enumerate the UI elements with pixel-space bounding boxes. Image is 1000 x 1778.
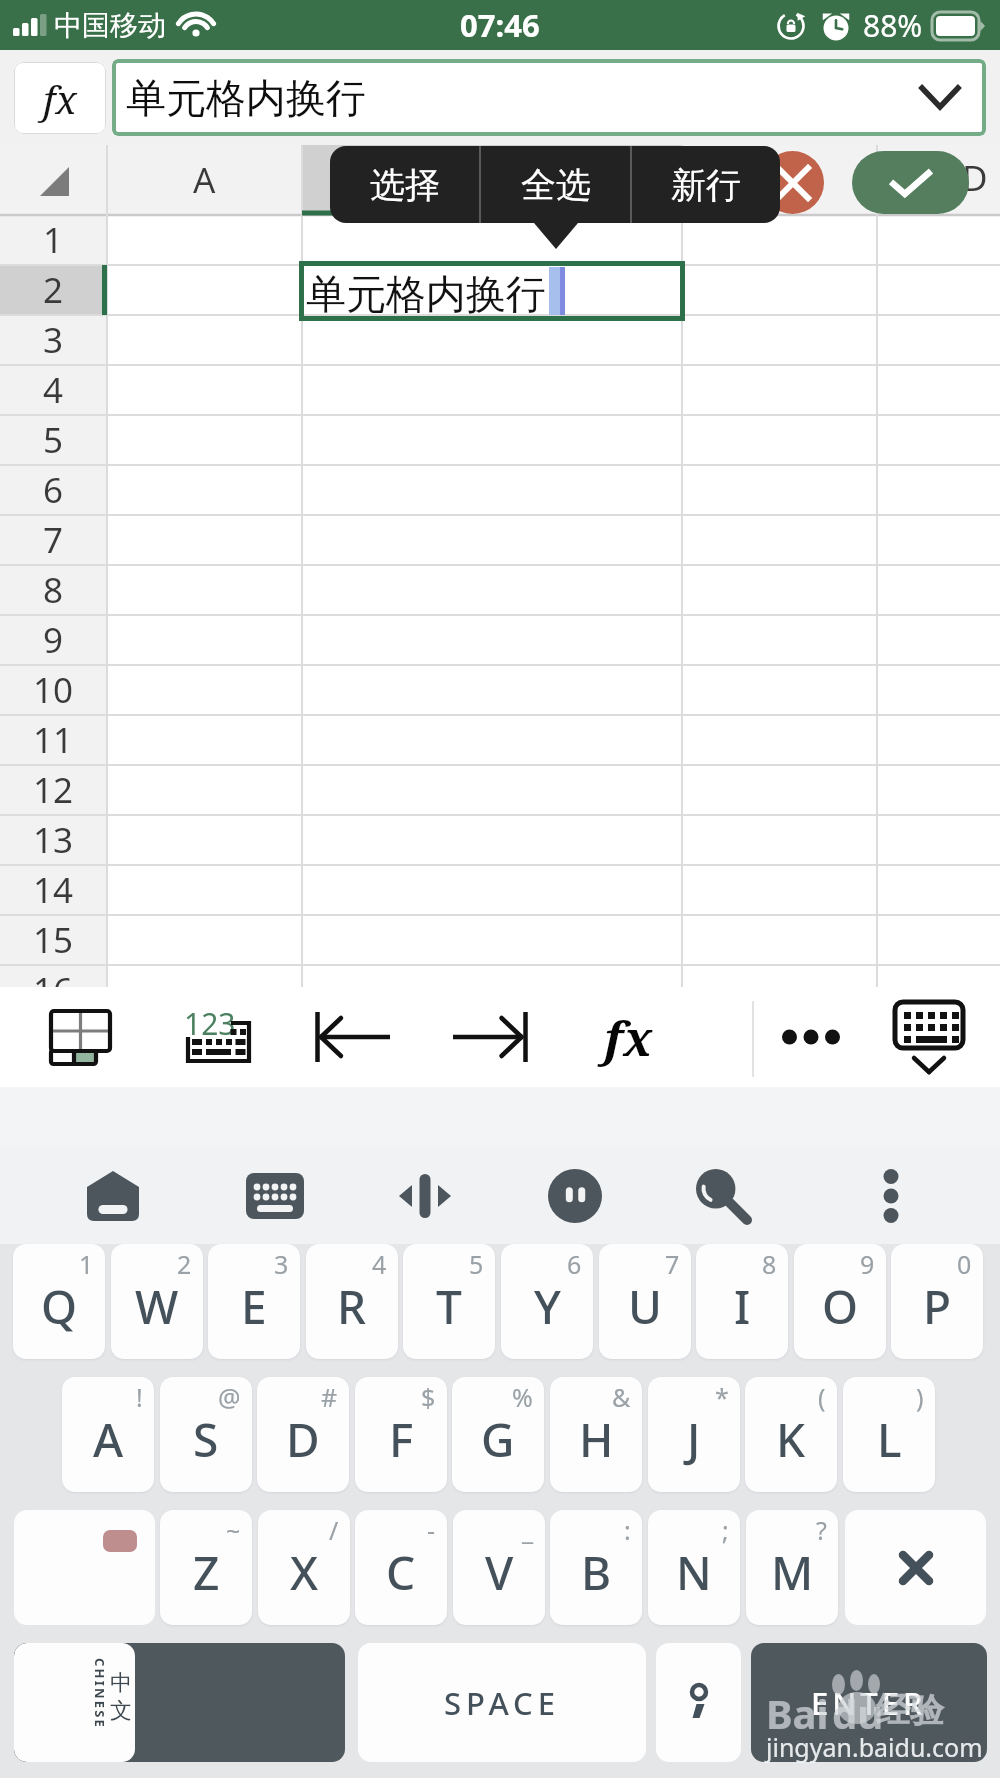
staticText: U	[628, 1275, 662, 1338]
button[interactable]: 全选	[481, 146, 630, 223]
staticText: 8	[43, 566, 64, 614]
button[interactable]: Accept	[852, 151, 969, 214]
button[interactable]: :	[550, 1510, 642, 1625]
button[interactable]: @	[160, 1377, 252, 1492]
button[interactable]: ~	[160, 1510, 252, 1625]
staticText: 88%	[863, 5, 923, 46]
button[interactable]: 选择	[330, 146, 479, 223]
staticText: 10	[33, 666, 74, 714]
staticText: O	[822, 1275, 859, 1338]
button[interactable]: Hide keyboard	[870, 987, 988, 1087]
button[interactable]: 2	[111, 1244, 203, 1359]
staticText: *	[715, 1380, 729, 1414]
staticText: D	[286, 1408, 320, 1471]
staticText: du	[832, 1686, 884, 1740]
button[interactable]: %	[452, 1377, 544, 1492]
staticText: S	[193, 1408, 219, 1471]
button[interactable]: Semicolon	[656, 1643, 741, 1762]
button[interactable]: 0	[891, 1244, 983, 1359]
button[interactable]: More options	[850, 1148, 932, 1244]
staticText: N	[676, 1541, 712, 1604]
button[interactable]: Move left	[292, 987, 412, 1087]
staticText: ;	[722, 1513, 729, 1547]
staticText: 7	[43, 516, 64, 564]
staticText: 单元格内换行	[126, 73, 366, 123]
staticText: Bai	[766, 1686, 829, 1740]
staticText: C	[386, 1541, 416, 1604]
button[interactable]: 9	[794, 1244, 886, 1359]
staticText: Z	[193, 1541, 220, 1604]
button[interactable]: 1	[13, 1244, 105, 1359]
button[interactable]: /	[258, 1510, 350, 1625]
button[interactable]: 3	[208, 1244, 300, 1359]
button[interactable]: Cursor move	[384, 1148, 466, 1244]
button[interactable]: 6	[501, 1244, 593, 1359]
button[interactable]: Keyboard layout	[234, 1148, 316, 1244]
button[interactable]: Emoji	[534, 1148, 616, 1244]
staticText: CHINESE	[91, 1658, 109, 1730]
button[interactable]: 4	[306, 1244, 398, 1359]
staticText: W	[135, 1275, 179, 1338]
staticText: 新行	[671, 163, 741, 207]
button[interactable]: ;	[648, 1510, 740, 1625]
staticText: )	[916, 1380, 924, 1414]
button[interactable]: Shift	[14, 1510, 155, 1625]
staticText: 9	[43, 616, 64, 664]
staticText: A	[193, 156, 216, 204]
button[interactable]: &	[550, 1377, 642, 1492]
button[interactable]: 5	[403, 1244, 495, 1359]
button[interactable]: Cancel	[761, 151, 824, 214]
staticText: I	[734, 1275, 751, 1338]
staticText: 12	[33, 766, 74, 814]
staticText: (	[818, 1380, 826, 1414]
button[interactable]: 单元格内换行	[112, 59, 986, 136]
button[interactable]: Search	[682, 1148, 764, 1244]
button[interactable]: (	[745, 1377, 837, 1492]
button[interactable]: Switch language	[14, 1643, 345, 1762]
button[interactable]: !	[62, 1377, 154, 1492]
button[interactable]: #	[257, 1377, 349, 1492]
staticText: 文	[110, 1697, 132, 1725]
button[interactable]: 7	[599, 1244, 691, 1359]
staticText: $	[421, 1380, 436, 1414]
button[interactable]: )	[843, 1377, 935, 1492]
staticText: 07:46	[460, 4, 540, 46]
button[interactable]: -	[355, 1510, 447, 1625]
staticText: fx	[43, 72, 77, 125]
staticText: 14	[33, 866, 74, 914]
staticText: 11	[33, 716, 74, 764]
button[interactable]: *	[648, 1377, 740, 1492]
button[interactable]: SPACE	[358, 1643, 646, 1762]
button[interactable]: More	[752, 987, 870, 1087]
button[interactable]: 8	[696, 1244, 788, 1359]
button[interactable]: 新行	[632, 146, 780, 223]
staticText: Y	[534, 1275, 561, 1338]
staticText: A	[93, 1408, 124, 1471]
staticText: #	[321, 1380, 338, 1414]
staticText: 6	[43, 466, 64, 514]
staticText: 4	[372, 1247, 387, 1281]
button[interactable]: Move right	[430, 987, 550, 1087]
staticText: R	[337, 1275, 367, 1338]
button[interactable]: ?	[746, 1510, 838, 1625]
button[interactable]: Backspace	[845, 1510, 986, 1625]
button[interactable]: Numeric keyboard	[160, 987, 280, 1087]
staticText: 15	[33, 916, 74, 964]
staticText: G	[481, 1408, 515, 1471]
staticText: 5	[469, 1247, 484, 1281]
button[interactable]: Home	[72, 1148, 154, 1244]
button[interactable]: ENTER	[751, 1643, 987, 1762]
button[interactable]: $	[355, 1377, 447, 1492]
button[interactable]: Function	[14, 62, 106, 134]
button[interactable]: Table format	[20, 987, 140, 1087]
staticText: ~	[226, 1513, 241, 1547]
staticText: D	[962, 154, 988, 202]
staticText: 123	[184, 1003, 236, 1044]
button[interactable]: _	[453, 1510, 545, 1625]
staticText: J	[687, 1408, 701, 1471]
staticText: -	[427, 1513, 436, 1547]
staticText: 3	[274, 1247, 289, 1281]
staticText: 8	[762, 1247, 777, 1281]
button[interactable]: Formula	[568, 987, 688, 1087]
